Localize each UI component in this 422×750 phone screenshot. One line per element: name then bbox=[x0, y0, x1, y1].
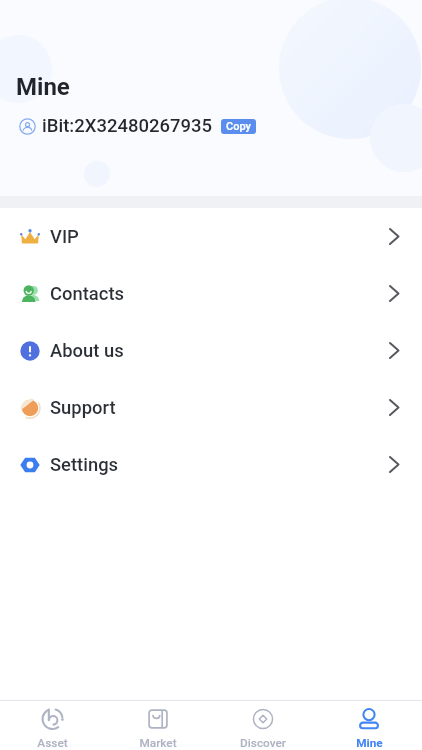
staticText: Contacts bbox=[50, 283, 125, 305]
button[interactable]: Asset bbox=[0, 701, 105, 750]
staticText: About us bbox=[50, 340, 124, 362]
staticText: Mine bbox=[16, 73, 70, 101]
button[interactable]: VIP bbox=[0, 208, 422, 265]
button[interactable]: Copy bbox=[221, 119, 256, 134]
button[interactable]: Discover bbox=[210, 701, 316, 750]
button[interactable]: Settings bbox=[0, 436, 422, 493]
staticText: Mine bbox=[356, 736, 383, 750]
button[interactable]: Support bbox=[0, 379, 422, 436]
staticText: Support bbox=[50, 397, 116, 419]
staticText: VIP bbox=[50, 226, 79, 248]
button[interactable]: Mine bbox=[316, 701, 422, 750]
staticText: Market bbox=[139, 736, 177, 750]
button[interactable]: Contacts bbox=[0, 265, 422, 322]
button[interactable]: Market bbox=[105, 701, 210, 750]
staticText: iBit:2X32480267935 bbox=[42, 115, 213, 137]
staticText: Settings bbox=[50, 454, 119, 476]
staticText: Discover bbox=[240, 736, 286, 750]
button[interactable]: About us bbox=[0, 322, 422, 379]
staticText: Copy bbox=[226, 120, 251, 133]
staticText: Asset bbox=[37, 736, 68, 750]
